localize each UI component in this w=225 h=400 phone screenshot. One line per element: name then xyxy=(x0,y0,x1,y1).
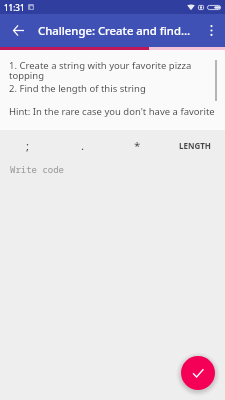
button[interactable]: Submit answer xyxy=(181,356,215,390)
staticText: ; xyxy=(26,138,30,154)
button[interactable]: More options xyxy=(198,14,224,47)
staticText: Challenge: Create and find… xyxy=(38,23,191,38)
staticText: * xyxy=(134,138,141,154)
staticText: 1. Create a string with your favorite pi… xyxy=(9,59,199,82)
button[interactable]: Navigate up xyxy=(0,14,36,47)
staticText: Write code xyxy=(10,163,65,175)
button[interactable]: LENGTH xyxy=(165,130,225,161)
staticText: 11:31 xyxy=(4,2,25,13)
staticText: Hint: In the rare case you don't have a … xyxy=(9,105,215,118)
staticText: . xyxy=(81,138,85,154)
button[interactable]: . xyxy=(55,130,110,161)
staticText: LENGTH xyxy=(179,140,211,151)
button[interactable]: * xyxy=(110,130,165,161)
button[interactable]: ; xyxy=(0,130,55,161)
staticText: 2. Find the length of this string xyxy=(9,82,146,95)
